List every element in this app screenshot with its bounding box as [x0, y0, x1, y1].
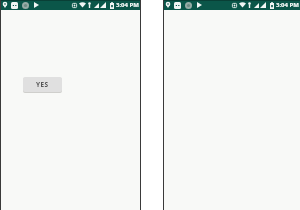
staticText: 3:04 PM	[276, 1, 299, 9]
button[interactable]: YES	[23, 77, 62, 92]
staticText: YES	[36, 80, 49, 89]
staticText: 3:04 PM	[116, 1, 139, 9]
